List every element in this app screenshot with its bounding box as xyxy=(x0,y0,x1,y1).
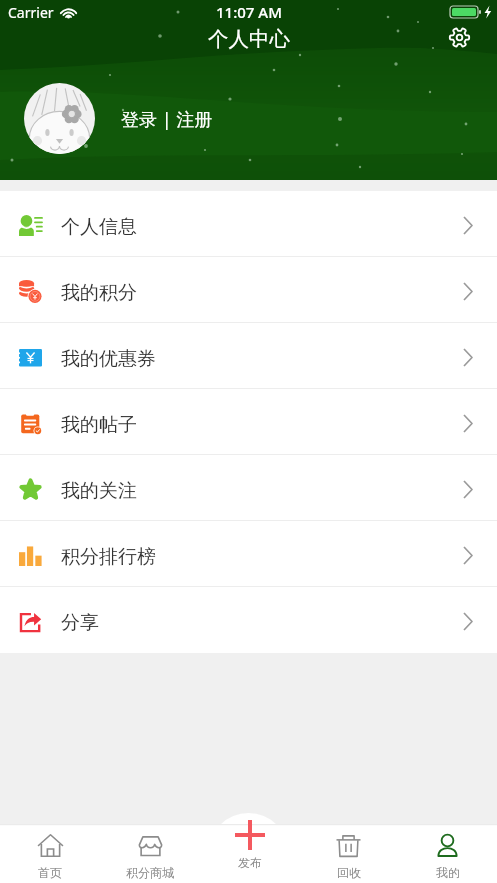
button[interactable]: 登录 | 注册 xyxy=(121,107,213,132)
staticText: 分享 xyxy=(61,611,99,635)
staticText: 我的优惠券 xyxy=(61,347,156,371)
staticText: 发布 xyxy=(238,855,262,870)
button[interactable]: 我的积分 xyxy=(0,257,497,323)
staticText: 我的关注 xyxy=(61,479,137,503)
staticText: 回收 xyxy=(337,865,361,880)
staticText: 我的 xyxy=(436,865,460,880)
button[interactable]: 我的 xyxy=(398,824,497,883)
staticText: 我的帖子 xyxy=(61,413,137,437)
button[interactable]: 回收 xyxy=(299,824,398,883)
button[interactable]: 分享 xyxy=(0,587,497,653)
staticText: 积分排行榜 xyxy=(61,545,156,569)
staticText: 我的积分 xyxy=(61,281,137,305)
button[interactable]: 我的关注 xyxy=(0,455,497,521)
button[interactable]: 发布 xyxy=(200,824,299,883)
staticText: 个人信息 xyxy=(61,215,137,239)
button[interactable]: Settings xyxy=(441,19,477,55)
button[interactable]: 首页 xyxy=(0,824,100,883)
button[interactable]: Avatar xyxy=(24,83,95,154)
button[interactable]: 我的帖子 xyxy=(0,389,497,455)
button[interactable]: 积分排行榜 xyxy=(0,521,497,587)
staticText: 首页 xyxy=(38,865,62,880)
staticText: 个人中心 xyxy=(208,26,290,52)
staticText: 11:07 AM xyxy=(216,2,282,22)
button[interactable]: 我的优惠券 xyxy=(0,323,497,389)
staticText: Carrier xyxy=(8,3,54,22)
staticText: 登录 | 注册 xyxy=(121,107,213,132)
button[interactable]: 个人信息 xyxy=(0,191,497,257)
staticText: 积分商城 xyxy=(126,865,174,880)
button[interactable]: 积分商城 xyxy=(100,824,200,883)
